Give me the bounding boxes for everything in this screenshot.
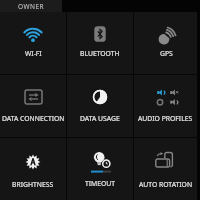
button[interactable]: WI-FI <box>0 12 66 74</box>
button[interactable]: TIMEOUT <box>67 138 133 200</box>
staticText: BLUETOOTH <box>80 49 120 58</box>
button[interactable]: OWNER <box>0 0 62 12</box>
staticText: BRIGHTNESS <box>12 180 54 189</box>
staticText: TIMEOUT <box>85 179 116 188</box>
button[interactable]: GPS <box>134 12 197 74</box>
button[interactable]: DATA CONNECTION <box>0 75 66 137</box>
staticText: DATA USAGE <box>80 114 120 123</box>
staticText: GPS <box>160 49 173 58</box>
staticText: AUDIO PROFILES <box>138 114 193 123</box>
staticText: OWNER <box>18 2 45 11</box>
button[interactable]: AUDIO PROFILES <box>134 75 197 137</box>
button[interactable]: DATA USAGE <box>67 75 133 137</box>
staticText: WI-FI <box>25 49 42 58</box>
staticText: AUTO ROTATION <box>139 180 193 189</box>
button[interactable]: AUTO ROTATION <box>134 138 197 200</box>
button[interactable]: BLUETOOTH <box>67 12 133 74</box>
staticText: DATA CONNECTION <box>2 114 65 123</box>
button[interactable]: BRIGHTNESS <box>0 138 66 200</box>
